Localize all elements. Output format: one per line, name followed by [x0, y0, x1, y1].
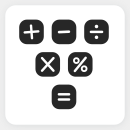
button[interactable]: Percent [68, 52, 93, 77]
button[interactable]: Divide [84, 20, 109, 44]
button[interactable]: Multiply [35, 52, 60, 77]
button[interactable]: Add [19, 20, 44, 44]
button[interactable]: Equals [52, 85, 76, 109]
button[interactable]: Subtract [52, 20, 76, 44]
